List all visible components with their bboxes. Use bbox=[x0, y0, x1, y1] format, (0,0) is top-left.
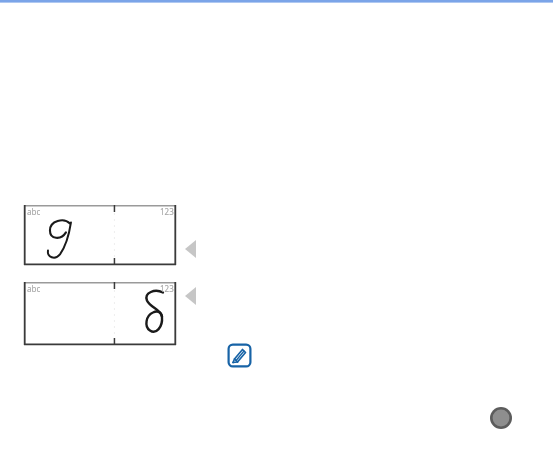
button[interactable] bbox=[24, 282, 176, 345]
staticText: 123 bbox=[160, 283, 174, 294]
staticText: abc bbox=[27, 206, 41, 217]
staticText: 123 bbox=[160, 206, 174, 217]
button[interactable]: Previous bbox=[183, 285, 199, 307]
button[interactable]: Record bbox=[489, 406, 513, 430]
button[interactable]: Handwriting input bbox=[227, 343, 252, 368]
button[interactable]: Previous bbox=[183, 238, 199, 260]
staticText: abc bbox=[27, 283, 41, 294]
button[interactable] bbox=[24, 205, 176, 265]
